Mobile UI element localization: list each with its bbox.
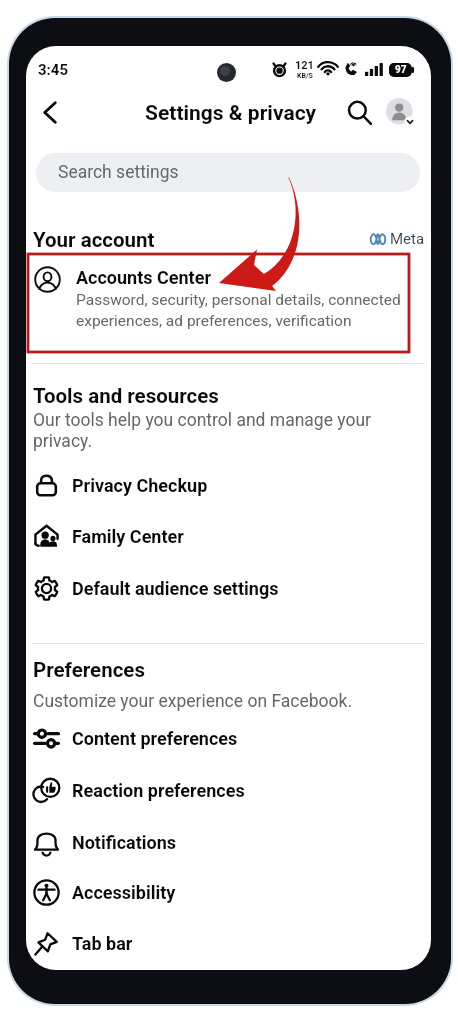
staticText: Privacy Checkup [72, 475, 208, 496]
staticText: Notifications [72, 832, 177, 853]
staticText: Default audience settings [72, 578, 279, 599]
staticText: Settings & privacy [145, 101, 317, 126]
staticText: Accounts Center [76, 267, 211, 288]
staticText: KB/S [297, 72, 313, 80]
button[interactable]: Default audience settings [26, 563, 431, 613]
staticText: Password, security, personal details, co… [76, 291, 417, 330]
staticText: 3:45 [38, 61, 69, 79]
button[interactable]: Content preferences [26, 713, 431, 763]
staticText: Family Center [72, 526, 184, 547]
staticText: Accessibility [72, 882, 176, 903]
staticText: Meta [390, 230, 425, 248]
button[interactable]: Accounts Center [26, 258, 431, 346]
button[interactable]: Back [28, 90, 72, 134]
button[interactable]: Your profile [386, 98, 416, 128]
staticText: Tools and resources [33, 384, 219, 408]
button[interactable]: Privacy Checkup [26, 460, 431, 510]
staticText: 121 [295, 59, 314, 72]
staticText: Your account [33, 228, 155, 252]
staticText: Our tools help you control and manage yo… [33, 410, 372, 431]
staticText: 97 [395, 64, 407, 76]
button[interactable]: Search settings [36, 153, 420, 192]
button[interactable]: Search [338, 91, 382, 135]
staticText: Reaction preferences [72, 780, 245, 801]
staticText: privacy. [33, 431, 93, 452]
button[interactable]: Accessibility [26, 867, 431, 917]
staticText: Tab bar [72, 933, 133, 954]
staticText: Content preferences [72, 728, 238, 749]
button[interactable]: Family Center [26, 511, 431, 561]
button[interactable]: Notifications [26, 817, 431, 867]
staticText: Customize your experience on Facebook. [33, 691, 352, 712]
button[interactable]: Reaction preferences [26, 765, 431, 815]
staticText: Search settings [58, 162, 179, 183]
staticText: Preferences [33, 658, 145, 682]
button[interactable]: Tab bar [26, 918, 431, 968]
